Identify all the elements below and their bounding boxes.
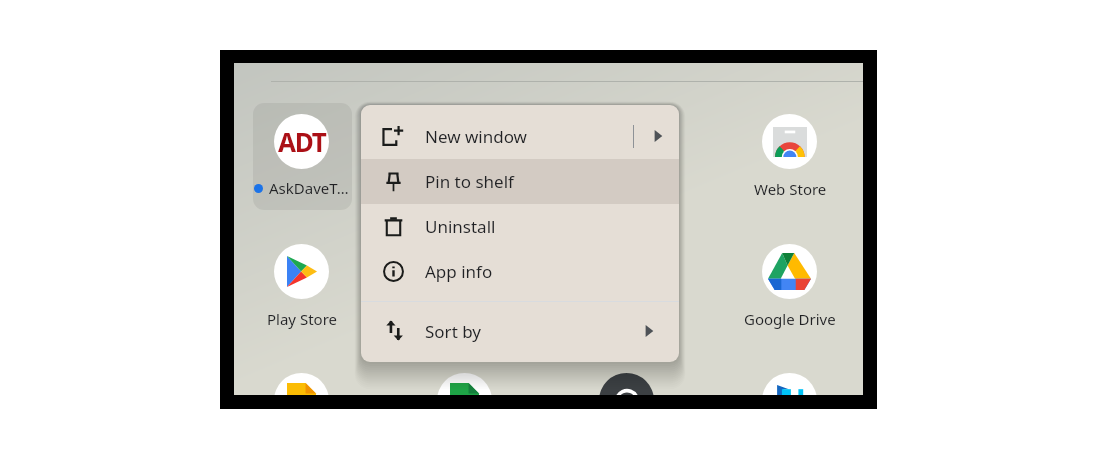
staticText: Uninstall: [425, 215, 496, 238]
button[interactable]: App: [599, 373, 654, 395]
button[interactable]: App: [762, 373, 817, 395]
button[interactable]: Sort by: [361, 309, 679, 354]
staticText: AskDaveT…: [269, 178, 349, 198]
button[interactable]: App: [274, 373, 329, 395]
staticText: Play Store: [267, 309, 337, 329]
button[interactable]: [762, 114, 817, 169]
staticText: Web Store: [754, 179, 827, 199]
button[interactable]: Uninstall: [361, 204, 679, 249]
button[interactable]: [253, 103, 352, 210]
button[interactable]: [274, 244, 329, 299]
staticText: Sort by: [425, 320, 481, 343]
staticText: Pin to shelf: [425, 170, 514, 193]
button[interactable]: App: [437, 373, 492, 395]
staticText: New window: [425, 125, 527, 148]
button[interactable]: [762, 244, 817, 299]
button[interactable]: App info: [361, 249, 679, 294]
staticText: Google Drive: [744, 309, 836, 329]
button[interactable]: Pin to shelf: [361, 159, 679, 204]
button[interactable]: New window: [361, 114, 679, 159]
staticText: App info: [425, 260, 493, 283]
staticText: ADT: [278, 124, 326, 159]
button[interactable]: ADT: [274, 114, 329, 169]
